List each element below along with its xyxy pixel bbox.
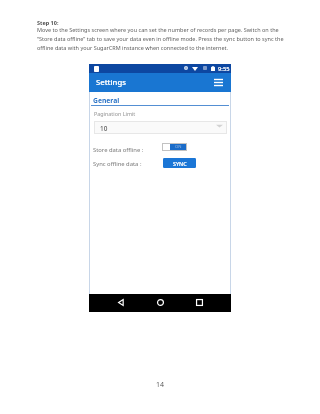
staticText: ON [175,144,182,150]
button[interactable]: Back [114,295,128,309]
staticText: Pagination Limit [94,110,136,117]
button[interactable]: Store data offline toggle [162,143,187,151]
button[interactable]: 10 [94,121,227,134]
button[interactable]: Home [153,295,167,309]
staticText: 10 [100,124,108,133]
staticText: SYNC [173,160,187,167]
staticText: Settings [96,77,126,87]
button[interactable]: SYNC [163,158,196,168]
staticText: 9:55 [218,65,230,73]
staticText: Sync offline data : [93,160,142,168]
button[interactable]: Menu [211,73,225,92]
staticText: General [93,96,120,105]
staticText: Move to the Settings screen where you ca… [37,26,286,51]
button[interactable]: Recents [192,295,206,309]
staticText: Step 10: [37,19,59,26]
staticText: Store data offline : [93,146,144,154]
staticText: 14 [156,380,165,390]
